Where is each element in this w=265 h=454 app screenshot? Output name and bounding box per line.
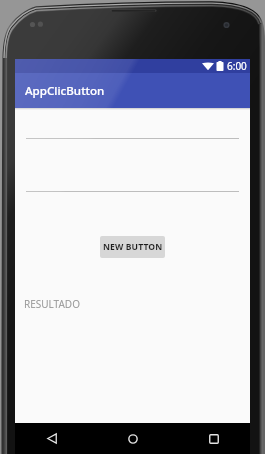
button[interactable]: Recent apps	[194, 423, 234, 454]
button[interactable]: Back	[32, 423, 72, 454]
button[interactable]: NEW BUTTON	[100, 236, 165, 258]
button[interactable]: Home	[113, 423, 153, 454]
staticText: AppClicButton	[25, 83, 105, 99]
staticText: NEW BUTTON	[103, 241, 163, 253]
staticText: 6:00	[227, 59, 247, 73]
staticText: RESULTADO	[24, 297, 80, 311]
